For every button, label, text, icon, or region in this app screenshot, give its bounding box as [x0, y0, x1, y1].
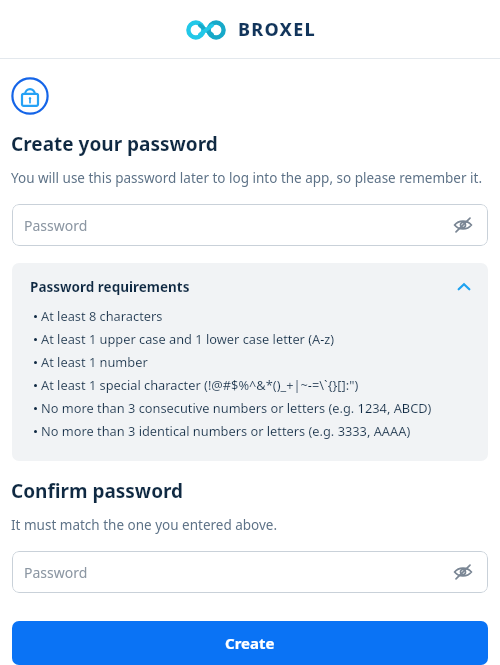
button[interactable]: Show password — [452, 561, 474, 583]
staticText: It must match the one you entered above. — [11, 516, 278, 534]
staticText: Password — [24, 216, 452, 235]
other: Collapse requirements — [454, 277, 474, 297]
staticText: Password requirements — [30, 278, 454, 296]
staticText: Create your password — [11, 131, 218, 157]
staticText: Password — [24, 563, 452, 582]
staticText: At least 1 number — [41, 353, 148, 370]
staticText: Confirm password — [11, 478, 184, 504]
staticText: You will use this password later to log … — [11, 169, 483, 187]
button[interactable]: Password requirements — [30, 277, 474, 297]
staticText: At least 1 special character (!@#$%^&*()… — [41, 376, 359, 393]
staticText: Create — [225, 633, 275, 653]
button[interactable]: Show password — [452, 214, 474, 236]
button[interactable]: Password — [12, 551, 488, 593]
staticText: No more than 3 identical numbers or lett… — [41, 422, 411, 439]
button[interactable]: Password — [12, 204, 488, 246]
staticText: No more than 3 consecutive numbers or le… — [41, 399, 432, 416]
button[interactable]: Create — [12, 621, 488, 665]
staticText: BROXEL — [238, 17, 316, 42]
staticText: At least 1 upper case and 1 lower case l… — [41, 330, 335, 347]
staticText: At least 8 characters — [41, 307, 163, 324]
